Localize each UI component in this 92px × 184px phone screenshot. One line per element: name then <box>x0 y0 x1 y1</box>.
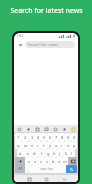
button[interactable]: e <box>29 141 35 149</box>
staticText: , <box>28 167 30 172</box>
button[interactable]: c <box>38 157 44 165</box>
staticText: input key <box>40 167 53 171</box>
staticText: . <box>62 167 64 172</box>
staticText: c <box>40 159 42 164</box>
staticText: b <box>52 159 55 164</box>
staticText: 9 <box>67 135 70 140</box>
button[interactable]: p <box>71 141 77 149</box>
button[interactable]: q <box>15 141 22 149</box>
staticText: Search for news <box>28 42 58 47</box>
button[interactable]: y <box>47 141 53 149</box>
staticText: 3 <box>31 135 34 140</box>
staticText: s <box>27 151 29 156</box>
button[interactable]: 5 <box>41 133 47 141</box>
button[interactable]: j <box>57 149 63 157</box>
button[interactable]: Mic <box>52 126 58 132</box>
button[interactable]: GIF <box>34 126 40 132</box>
button[interactable]: Sticker <box>61 126 67 132</box>
staticText: 7:04 <box>17 34 23 38</box>
button[interactable]: 1 <box>15 133 22 141</box>
staticText: h <box>53 151 56 156</box>
staticText: 2 <box>24 135 27 140</box>
button[interactable]: Home <box>43 176 49 182</box>
button[interactable]: d <box>31 149 38 157</box>
button[interactable]: w <box>22 141 29 149</box>
button[interactable]: 7 <box>53 133 59 141</box>
button[interactable]: u <box>53 141 59 149</box>
button[interactable]: Recents <box>26 176 32 182</box>
staticText: u <box>55 143 58 148</box>
staticText: m <box>63 159 67 164</box>
staticText: l <box>71 151 73 156</box>
button[interactable]: Search <box>66 165 77 173</box>
staticText: !#1 <box>18 167 23 171</box>
button[interactable]: 4 <box>35 133 41 141</box>
staticText: f <box>41 151 43 156</box>
button[interactable]: m <box>62 157 68 165</box>
button[interactable]: Search for news <box>25 41 75 48</box>
staticText: j <box>59 151 61 156</box>
staticText: v <box>46 159 49 164</box>
button[interactable]: z <box>25 157 32 165</box>
staticText: k <box>65 151 68 156</box>
button[interactable]: More <box>70 126 76 132</box>
staticText: i <box>61 143 63 148</box>
staticText: 1 <box>17 135 20 140</box>
staticText: n <box>58 159 61 164</box>
button[interactable]: 0 <box>71 133 77 141</box>
button[interactable]: !#1 <box>15 165 25 173</box>
button[interactable]: Back <box>17 41 24 48</box>
button[interactable]: o <box>65 141 71 149</box>
button[interactable]: n <box>56 157 62 165</box>
staticText: a <box>19 151 22 156</box>
staticText: Search for latest news <box>10 6 83 16</box>
button[interactable]: g <box>45 149 51 157</box>
button[interactable]: Backspace <box>68 157 77 165</box>
button[interactable]: b <box>50 157 56 165</box>
button[interactable]: 3 <box>29 133 35 141</box>
button[interactable]: 2 <box>22 133 29 141</box>
staticText: 0 <box>73 135 76 140</box>
button[interactable]: 8 <box>59 133 65 141</box>
button[interactable]: Back <box>61 176 67 182</box>
staticText: t <box>43 143 45 148</box>
button[interactable]: Clipboard <box>43 126 49 132</box>
button[interactable]: s <box>24 149 31 157</box>
button[interactable]: l <box>69 149 75 157</box>
staticText: d <box>33 151 36 156</box>
staticText: r <box>37 143 39 148</box>
staticText: g <box>47 151 50 156</box>
staticText: w <box>24 143 28 148</box>
staticText: 7 <box>55 135 58 140</box>
button[interactable]: v <box>44 157 50 165</box>
button[interactable]: f <box>38 149 45 157</box>
staticText: 6 <box>49 135 52 140</box>
button[interactable]: Emoji <box>16 126 22 132</box>
button[interactable]: h <box>51 149 57 157</box>
button[interactable]: x <box>32 157 38 165</box>
staticText: p <box>73 143 76 148</box>
staticText: q <box>17 143 20 148</box>
staticText: o <box>67 143 70 148</box>
staticText: 8 <box>61 135 64 140</box>
staticText: x <box>34 159 37 164</box>
button[interactable]: , <box>25 165 32 173</box>
staticText: z <box>28 159 30 164</box>
button[interactable]: r <box>35 141 41 149</box>
button[interactable]: 9 <box>65 133 71 141</box>
button[interactable]: a <box>17 149 24 157</box>
staticText: 5 <box>43 135 46 140</box>
button[interactable]: Shift <box>15 157 25 165</box>
button[interactable]: i <box>59 141 65 149</box>
button[interactable]: 6 <box>47 133 53 141</box>
staticText: 4 <box>37 135 40 140</box>
button[interactable]: . <box>60 165 66 173</box>
button[interactable]: t <box>41 141 47 149</box>
button[interactable]: Space <box>32 165 60 173</box>
staticText: e <box>31 143 34 148</box>
button[interactable]: Settings <box>25 126 31 132</box>
staticText: y <box>49 143 52 148</box>
button[interactable]: k <box>63 149 69 157</box>
